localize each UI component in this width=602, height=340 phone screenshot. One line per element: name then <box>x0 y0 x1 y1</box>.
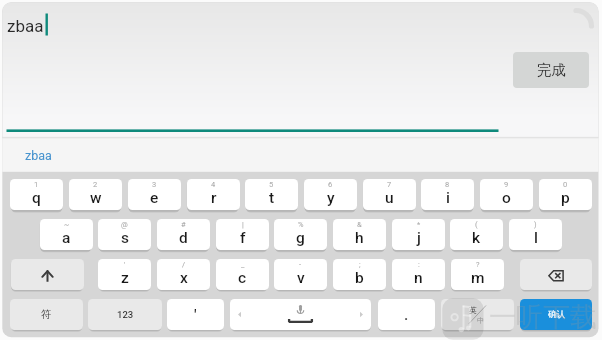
button[interactable]: f <box>216 219 269 250</box>
staticText: 123 <box>117 309 134 320</box>
staticText: 7 <box>387 180 392 189</box>
staticText: 8 <box>445 180 450 189</box>
button[interactable]: v <box>274 259 327 290</box>
staticText: f <box>240 229 246 247</box>
staticText: 5 <box>269 180 274 189</box>
button[interactable]: Backspace <box>520 259 592 290</box>
button[interactable]: Shift <box>11 259 84 290</box>
staticText: 0 <box>563 180 568 189</box>
staticText: x <box>180 269 188 287</box>
staticText: ; <box>359 260 361 269</box>
staticText: z <box>121 269 129 287</box>
staticText: 2 <box>93 180 98 189</box>
button[interactable]: t <box>245 179 298 210</box>
staticText: 中 <box>477 316 484 325</box>
staticText: 9 <box>504 180 509 189</box>
button[interactable]: zbaa <box>14 141 62 169</box>
staticText: ' <box>124 260 126 269</box>
staticText: 6 <box>328 180 333 189</box>
staticText: 3 <box>152 180 157 189</box>
button[interactable]: ' <box>167 299 224 330</box>
button[interactable]: o <box>480 179 533 210</box>
button[interactable]: Space <box>230 299 371 330</box>
staticText: ' <box>194 306 197 324</box>
button[interactable]: z <box>98 259 151 290</box>
staticText: v <box>297 269 305 287</box>
staticText: p <box>561 189 570 207</box>
staticText: u <box>385 189 394 207</box>
staticText: 英 <box>469 305 477 315</box>
staticText: : <box>418 260 420 269</box>
button[interactable]: e <box>128 179 181 210</box>
button[interactable]: x <box>157 259 210 290</box>
staticText: b <box>355 269 364 287</box>
staticText: 完成 <box>537 61 566 79</box>
staticText: s <box>121 229 129 247</box>
staticText: ~ <box>64 220 70 229</box>
button[interactable]: p <box>539 179 592 210</box>
button[interactable]: j <box>392 219 445 250</box>
button[interactable]: m <box>451 259 504 290</box>
staticText: @ <box>121 220 128 229</box>
staticText: h <box>355 229 364 247</box>
staticText: ? <box>476 260 480 269</box>
button[interactable]: k <box>450 219 503 250</box>
staticText: o <box>502 189 511 207</box>
staticText: % <box>298 220 304 229</box>
button[interactable]: 123 <box>88 299 162 330</box>
staticText: l <box>534 229 538 247</box>
staticText: 一听下载 <box>489 300 597 334</box>
staticText: c <box>238 269 247 287</box>
button[interactable]: i <box>421 179 474 210</box>
staticText: _ <box>241 260 245 269</box>
button[interactable]: g <box>274 219 327 250</box>
staticText: k <box>472 229 481 247</box>
staticText: a <box>62 229 71 247</box>
staticText: n <box>414 269 423 287</box>
button[interactable]: y <box>304 179 357 210</box>
staticText: i <box>446 189 450 207</box>
staticText: e <box>150 189 159 207</box>
staticText: # <box>181 220 186 229</box>
staticText: - <box>299 260 302 269</box>
staticText: y <box>327 189 335 207</box>
staticText: d <box>179 229 188 247</box>
button[interactable]: c <box>216 259 269 290</box>
staticText: ( <box>475 220 478 229</box>
staticText: j <box>417 229 421 247</box>
staticText: zbaa <box>25 148 52 163</box>
button[interactable]: d <box>157 219 210 250</box>
staticText: * <box>417 220 421 229</box>
button[interactable]: . <box>378 299 435 330</box>
staticText: t <box>269 189 275 207</box>
button[interactable]: 符 <box>10 299 83 330</box>
staticText: ) <box>534 220 537 229</box>
button[interactable]: u <box>363 179 416 210</box>
staticText: . <box>404 306 409 324</box>
button[interactable]: s <box>98 219 151 250</box>
staticText: 1 <box>34 180 39 189</box>
button[interactable]: w <box>69 179 122 210</box>
button[interactable]: q <box>10 179 63 210</box>
staticText: 4 <box>211 180 216 189</box>
staticText: zbaa <box>7 16 44 36</box>
button[interactable]: Confirm <box>520 299 592 330</box>
button[interactable]: n <box>392 259 445 290</box>
staticText: w <box>90 189 102 207</box>
button[interactable]: h <box>333 219 386 250</box>
staticText: q <box>32 189 41 207</box>
staticText: & <box>357 220 362 229</box>
staticText: g <box>296 229 305 247</box>
staticText: 符 <box>41 308 52 321</box>
staticText: 确认 <box>548 309 565 320</box>
staticText: r <box>211 189 217 207</box>
staticText: / <box>182 260 186 269</box>
button[interactable]: b <box>333 259 386 290</box>
button[interactable]: 完成 <box>513 52 589 88</box>
button[interactable]: l <box>509 219 562 250</box>
button[interactable]: Switch input language <box>441 299 514 330</box>
staticText: m <box>471 269 485 287</box>
staticText: | <box>242 220 244 229</box>
button[interactable]: r <box>187 179 240 210</box>
button[interactable]: a <box>40 219 93 250</box>
